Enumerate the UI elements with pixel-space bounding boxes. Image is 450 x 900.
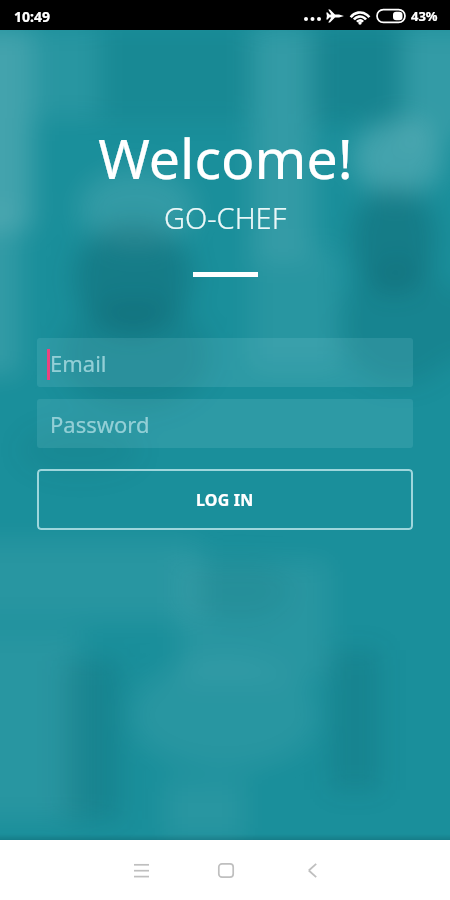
staticText: Password [50,409,150,439]
staticText: Email [50,348,107,378]
staticText: GO-CHEF [164,198,287,237]
button[interactable]: Recent apps [96,840,186,900]
staticText: Welcome! [98,120,353,196]
button[interactable]: Password [37,399,413,448]
button[interactable]: Home [181,840,271,900]
staticText: 43% [411,7,438,25]
staticText: 10:49 [14,7,50,26]
staticText: LOG IN [196,489,254,511]
button[interactable]: Email [37,338,413,387]
button[interactable]: LOG IN [37,469,413,530]
button[interactable]: Back [267,840,357,900]
